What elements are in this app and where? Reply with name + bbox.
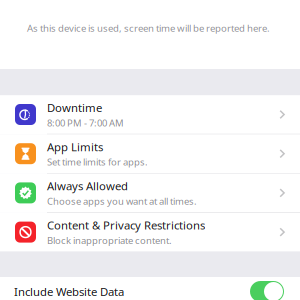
staticText: Downtime	[47, 100, 102, 115]
staticText: Choose apps you want at all times.	[47, 195, 197, 208]
staticText: As this device is used, screen time will…	[27, 21, 270, 35]
staticText: Always Allowed	[47, 178, 128, 194]
staticText: Set time limits for apps.	[47, 155, 148, 168]
staticText: App Limits	[47, 139, 103, 154]
button[interactable]: Downtime	[0, 95, 300, 134]
staticText: Include Website Data	[14, 284, 124, 299]
staticText: 8:00 PM - 7:00 AM	[47, 116, 124, 129]
button[interactable]: Include Website Data	[0, 277, 300, 300]
staticText: Block inappropriate content.	[47, 234, 172, 247]
staticText: Content & Privacy Restrictions	[47, 217, 205, 233]
button[interactable]: Always Allowed	[0, 174, 300, 213]
button[interactable]: App Limits	[0, 134, 300, 174]
button[interactable]: Content & Privacy Restrictions	[0, 213, 300, 251]
